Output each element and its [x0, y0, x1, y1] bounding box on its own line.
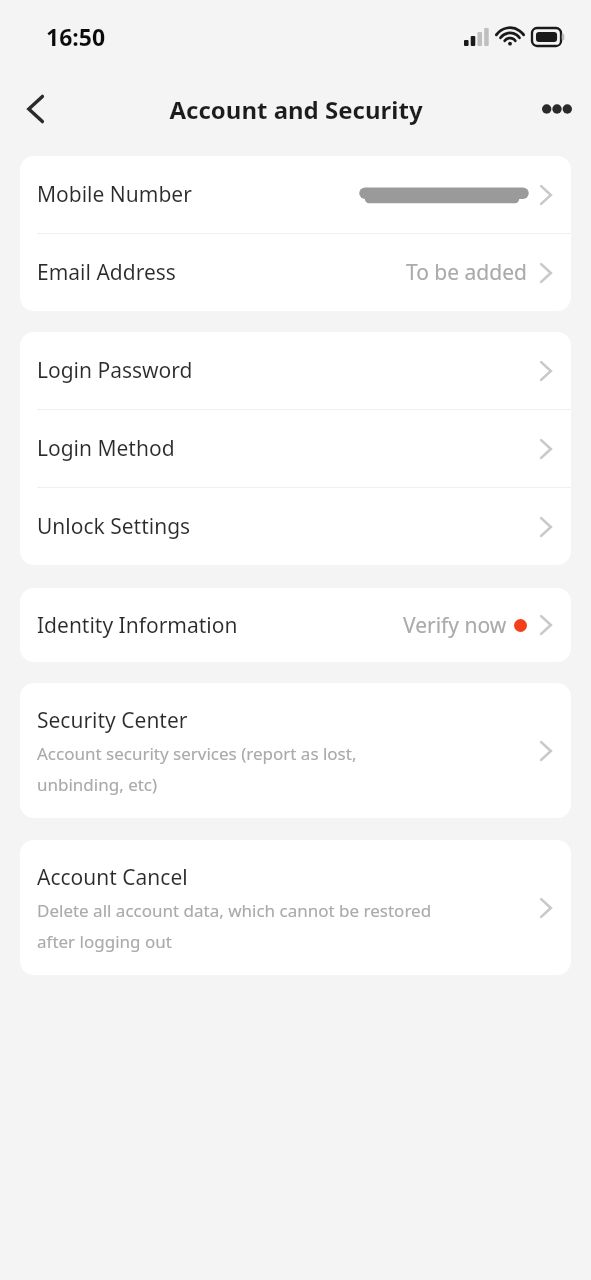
button[interactable]: Mobile Number — [20, 156, 571, 233]
button[interactable]: Email Address — [20, 234, 571, 311]
staticText: Mobile Number — [37, 180, 192, 209]
staticText: Email Address — [37, 258, 176, 287]
staticText: Account Cancel — [37, 863, 188, 892]
staticText: Login Method — [37, 434, 175, 463]
button[interactable]: Identity Information — [20, 588, 571, 662]
button[interactable]: Login Password — [20, 332, 571, 409]
staticText: Login Password — [37, 356, 193, 385]
button[interactable]: Login Method — [20, 410, 571, 487]
staticText: Security Center — [37, 706, 188, 735]
staticText: Delete all account data, which cannot be… — [37, 899, 432, 953]
staticText: To be added — [406, 258, 527, 287]
staticText: Account and Security — [169, 93, 423, 126]
button[interactable]: More options — [531, 83, 583, 135]
button[interactable]: Account Cancel — [20, 840, 571, 975]
staticText: 16:50 — [46, 21, 106, 52]
button[interactable]: Back — [10, 83, 62, 135]
button[interactable]: Security Center — [20, 683, 571, 818]
button[interactable]: Unlock Settings — [20, 488, 571, 565]
staticText: Account security services (report as los… — [37, 742, 357, 796]
staticText: Identity Information — [37, 611, 238, 640]
staticText: Verify now — [403, 611, 507, 640]
staticText: Unlock Settings — [37, 512, 191, 541]
